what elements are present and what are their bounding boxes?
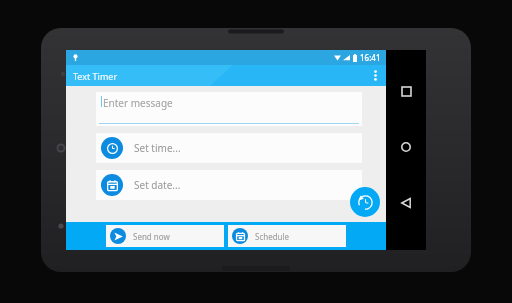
button[interactable]: Recent apps [391,76,421,106]
button[interactable]: History [350,187,380,217]
button[interactable]: Set date... [96,170,362,200]
staticText: Enter message [103,96,173,110]
button[interactable]: Send now [106,225,224,247]
button[interactable]: Back [391,188,421,218]
staticText: Schedule [255,231,290,242]
staticText: Set date... [134,178,181,192]
staticText: Send now [133,231,170,242]
staticText: Text Timer [73,70,118,82]
staticText: Set time... [134,141,181,155]
button[interactable]: Schedule [228,225,346,247]
staticText: 16:41 [360,52,381,63]
button[interactable]: More options [364,65,386,86]
button[interactable]: Set time... [96,133,362,163]
button[interactable]: Enter message [96,92,362,126]
button[interactable]: Home [391,132,421,162]
